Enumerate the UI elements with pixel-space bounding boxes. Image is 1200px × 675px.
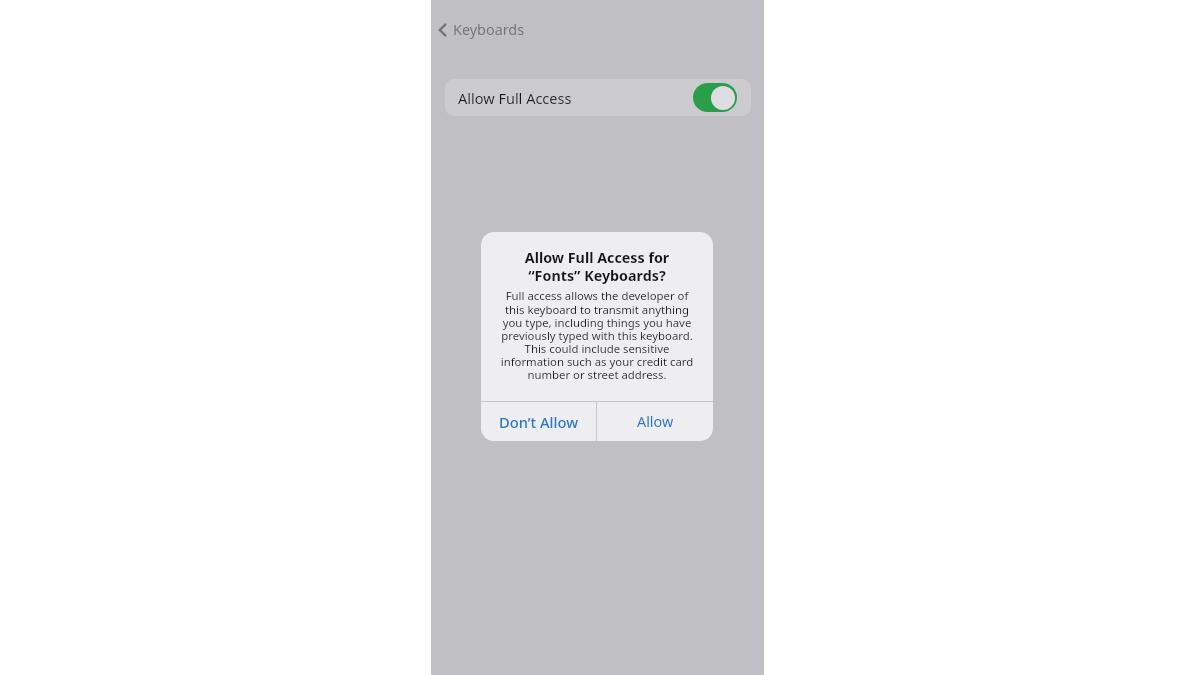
staticText: Allow Full Access for “Fonts” Keyboards? [491,248,703,285]
staticText: Full access allows the developer of this… [481,288,713,382]
button[interactable]: Back [434,17,528,43]
button[interactable]: Don’t Allow [481,402,596,441]
button[interactable]: Allow [597,402,713,441]
button[interactable]: Allow Full Access toggle, on [693,83,737,112]
staticText: Don’t Allow [499,412,579,432]
other: Back [437,21,448,39]
staticText: Allow Full Access [458,88,572,108]
button[interactable]: Allow Full Access [445,79,751,116]
staticText: Allow [637,412,674,431]
staticText: Keyboards [453,20,525,40]
